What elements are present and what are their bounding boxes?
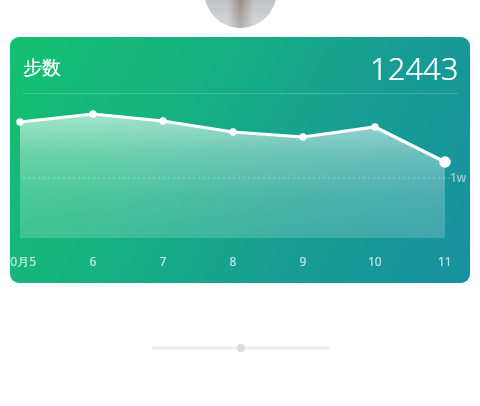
button[interactable]: [0, 0, 480, 406]
button[interactable]: Profile photo: [0, 0, 480, 406]
